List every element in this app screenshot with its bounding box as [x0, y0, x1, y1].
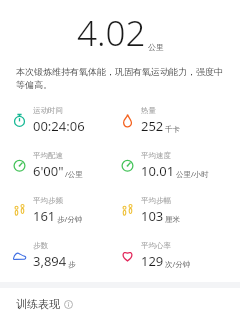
button[interactable]: 热量 [120, 105, 228, 136]
button[interactable]: 平均步频 [12, 195, 120, 226]
staticText: 公里 [148, 42, 164, 52]
other: 运动时间 [12, 113, 27, 128]
staticText: 热量 [141, 106, 156, 115]
other: 热量 [120, 113, 135, 128]
button[interactable]: 平均配速 [12, 150, 120, 181]
other: Info [64, 300, 73, 309]
staticText: 252 [141, 117, 164, 135]
staticText: 6'00" [33, 162, 64, 180]
staticText: 3,894 [33, 252, 67, 270]
staticText: /公里 [65, 169, 83, 179]
button[interactable]: 平均心率 [120, 240, 228, 271]
button[interactable]: 步数 [12, 240, 120, 271]
other: 平均心率 [120, 248, 135, 263]
staticText: 厘米 [165, 215, 180, 224]
button[interactable]: 运动时间 [12, 105, 120, 136]
staticText: 步数 [33, 241, 48, 250]
other: 平均步频 [12, 203, 27, 218]
staticText: 公里/小时 [176, 169, 209, 179]
staticText: 本次锻炼维持有氧体能，巩固有氧运动能力，强度中等偏高。 [16, 66, 224, 91]
staticText: 161 [33, 207, 56, 225]
staticText: 训练表现 [16, 297, 60, 311]
staticText: 平均步频 [33, 196, 63, 205]
staticText: 千卡 [165, 125, 180, 134]
staticText: 次/分钟 [165, 259, 191, 269]
staticText: 运动时间 [33, 106, 63, 115]
button[interactable]: 平均步幅 [120, 195, 228, 226]
staticText: 步 [68, 260, 76, 269]
staticText: 平均配速 [33, 151, 63, 160]
staticText: 平均步幅 [141, 196, 171, 205]
staticText: 平均心率 [141, 241, 171, 250]
staticText: 129 [141, 252, 164, 270]
button[interactable]: 训练表现 [0, 297, 240, 311]
staticText: 103 [141, 207, 164, 225]
other: 平均配速 [12, 158, 27, 173]
staticText: 00:24:06 [33, 117, 85, 135]
button[interactable]: 平均速度 [120, 150, 228, 181]
staticText: 4.02 [77, 9, 146, 57]
staticText: 10.01 [141, 162, 175, 180]
other: 平均速度 [120, 158, 135, 173]
staticText: 平均速度 [141, 151, 171, 160]
staticText: 步/分钟 [57, 214, 83, 224]
other: 平均步幅 [120, 203, 135, 218]
other: 步数 [12, 248, 27, 263]
